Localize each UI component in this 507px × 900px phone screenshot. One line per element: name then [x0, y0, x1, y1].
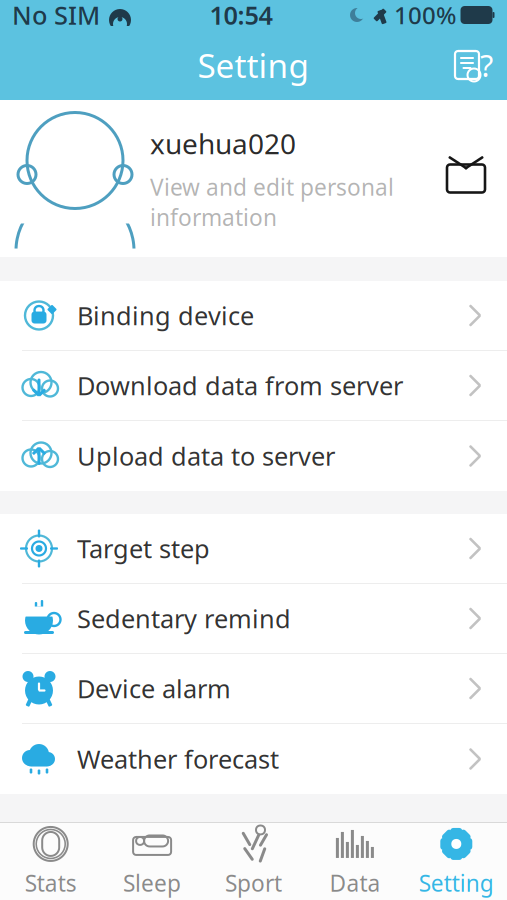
button[interactable]: Sleep [101, 822, 203, 900]
staticText: Setting [197, 43, 309, 87]
button[interactable]: Data [304, 822, 406, 900]
button[interactable]: Help [441, 40, 507, 90]
staticText: Target step [77, 532, 210, 565]
staticText: Device alarm [77, 672, 231, 705]
staticText: xuehua020 [150, 125, 296, 162]
button[interactable]: Setting [406, 822, 507, 900]
button[interactable]: Target step [0, 514, 507, 584]
staticText: No SIM [12, 0, 100, 32]
button[interactable]: Device alarm [0, 654, 507, 724]
button[interactable]: xuehua020 [0, 100, 507, 257]
staticText: Weather forecast [77, 742, 279, 776]
staticText: 10:54 [209, 0, 272, 32]
staticText: Sleep [123, 868, 181, 898]
button[interactable]: Binding device [0, 281, 507, 351]
button[interactable]: Upload data to server [0, 421, 507, 491]
button[interactable]: Stats [0, 822, 101, 900]
staticText: Sedentary remind [77, 602, 291, 635]
staticText: Sport [225, 868, 282, 898]
staticText: Stats [25, 868, 77, 898]
staticText: View and edit personal information [150, 172, 394, 232]
button[interactable]: Download data from server [0, 351, 507, 421]
button[interactable]: Weather forecast [0, 724, 507, 794]
staticText: ? [480, 45, 493, 85]
button[interactable]: Sport [203, 822, 304, 900]
staticText: Binding device [77, 299, 254, 332]
staticText: Upload data to server [77, 439, 335, 473]
staticText: Setting [419, 868, 494, 898]
staticText: Data [329, 868, 380, 898]
staticText: 100% [394, 0, 456, 31]
staticText: Download data from server [77, 369, 403, 402]
button[interactable]: Sedentary remind [0, 584, 507, 654]
